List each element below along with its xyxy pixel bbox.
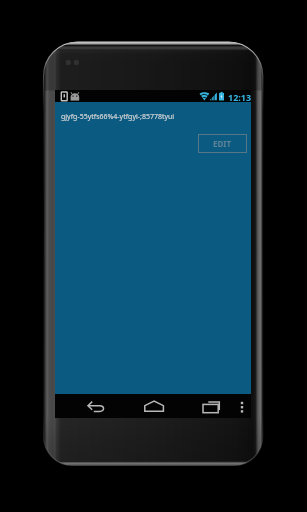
button[interactable]: Recent apps [189, 394, 234, 418]
button[interactable]: More options [232, 394, 251, 418]
button[interactable]: EDIT [198, 134, 247, 153]
staticText: 12:13 [228, 91, 252, 103]
staticText: gjyfg-55ytfs66%4-ytfgyi-;85778tyui [61, 112, 175, 122]
staticText: EDIT [213, 138, 232, 149]
button[interactable]: Home [131, 394, 176, 418]
button[interactable]: Back [73, 394, 119, 418]
